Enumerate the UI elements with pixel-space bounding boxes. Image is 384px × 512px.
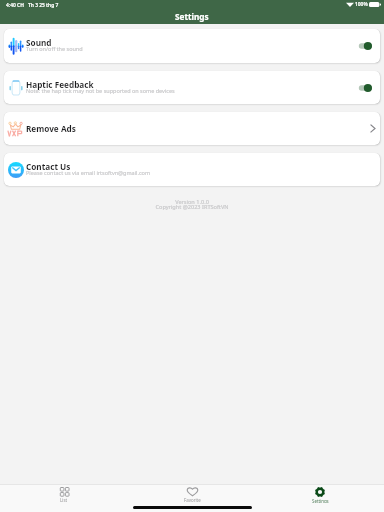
button[interactable]: Settings bbox=[256, 485, 384, 503]
staticText: Sound bbox=[26, 37, 52, 48]
staticText: Settings bbox=[175, 11, 209, 22]
button[interactable]: Haptic Feedback bbox=[4, 71, 380, 104]
button[interactable]: Toggle on bbox=[358, 41, 372, 51]
staticText: Favorite bbox=[184, 497, 201, 503]
staticText: Contact Us bbox=[26, 161, 71, 172]
staticText: Settings bbox=[312, 498, 329, 503]
button[interactable]: Sound bbox=[4, 29, 380, 63]
staticText: 100% bbox=[355, 1, 368, 8]
staticText: Th 3 25 thg 7 bbox=[28, 2, 59, 9]
staticText: Remove Ads bbox=[26, 123, 76, 134]
staticText: Version 1.0.0 bbox=[0, 198, 384, 206]
staticText: Note: the hap tick may not be supported … bbox=[26, 87, 175, 94]
staticText: Haptic Feedback bbox=[26, 79, 94, 90]
staticText: 4:40 CH bbox=[6, 2, 24, 9]
button[interactable]: Favorite bbox=[128, 485, 256, 503]
button[interactable]: Open Remove Ads bbox=[367, 123, 378, 134]
staticText: Turn on/off the sound bbox=[26, 45, 83, 52]
staticText: Copyright @2023 IRTSoftVN bbox=[0, 203, 384, 211]
staticText: List bbox=[60, 497, 68, 503]
button[interactable]: List bbox=[0, 485, 128, 503]
button[interactable]: Contact Us bbox=[4, 153, 380, 186]
staticText: Please contact us via email irtsoftvn@gm… bbox=[26, 169, 151, 176]
button[interactable]: Remove Ads bbox=[4, 112, 380, 145]
button[interactable]: Toggle on bbox=[358, 83, 372, 93]
